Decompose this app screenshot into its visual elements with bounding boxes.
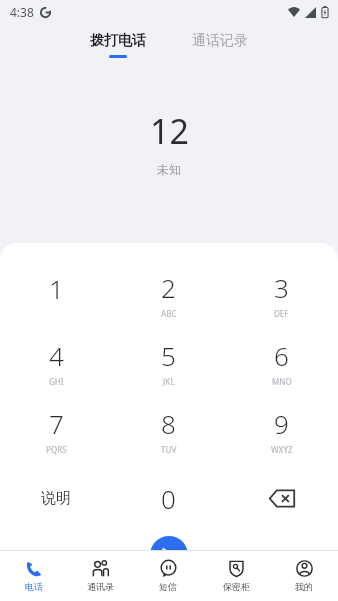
- button[interactable]: 短信: [134, 551, 202, 601]
- button[interactable]: 保密柜: [202, 551, 270, 601]
- staticText: 12: [150, 108, 189, 154]
- button[interactable]: 9: [225, 396, 338, 464]
- button[interactable]: 1: [0, 260, 112, 328]
- staticText: GHI: [49, 376, 64, 387]
- button[interactable]: 6: [225, 328, 338, 396]
- staticText: WXYZ: [271, 444, 293, 455]
- staticText: 保密柜: [223, 581, 250, 592]
- staticText: 4: [49, 338, 64, 373]
- staticText: TUV: [161, 444, 177, 455]
- staticText: 2: [161, 270, 176, 305]
- staticText: 通讯录: [87, 581, 114, 592]
- button[interactable]: 我的: [270, 551, 338, 601]
- staticText: 6: [274, 338, 289, 373]
- button[interactable]: 拨打电话: [86, 30, 150, 60]
- button[interactable]: 8: [112, 396, 225, 464]
- staticText: PQRS: [46, 444, 67, 455]
- staticText: 0: [161, 481, 176, 516]
- staticText: 1: [49, 271, 64, 306]
- button[interactable]: 电话: [0, 551, 67, 601]
- button[interactable]: 通讯录: [67, 551, 134, 601]
- staticText: DEF: [274, 308, 289, 319]
- button[interactable]: 5: [112, 328, 225, 396]
- button[interactable]: 4: [0, 328, 112, 396]
- staticText: 说明: [41, 489, 71, 508]
- button[interactable]: 通话记录: [188, 30, 252, 60]
- button[interactable]: 2: [112, 260, 225, 328]
- staticText: 未知: [157, 162, 181, 177]
- staticText: 4:38: [10, 4, 34, 20]
- staticText: 8: [161, 406, 176, 441]
- staticText: JKL: [163, 376, 175, 387]
- staticText: 9: [274, 406, 289, 441]
- staticText: 3: [274, 270, 289, 305]
- staticText: 我的: [295, 581, 313, 592]
- button[interactable]: Call: [150, 536, 188, 574]
- staticText: 电话: [25, 581, 43, 592]
- staticText: MNO: [272, 376, 292, 387]
- staticText: 拨打电话: [90, 32, 146, 50]
- staticText: 7: [49, 406, 64, 441]
- staticText: 短信: [159, 581, 177, 592]
- button[interactable]: 0: [112, 464, 225, 532]
- button[interactable]: 3: [225, 260, 338, 328]
- staticText: 通话记录: [192, 32, 248, 50]
- staticText: 5: [161, 338, 176, 373]
- button[interactable]: Backspace: [225, 464, 338, 532]
- staticText: ABC: [161, 308, 177, 319]
- button[interactable]: 7: [0, 396, 112, 464]
- button[interactable]: 说明: [0, 464, 112, 532]
